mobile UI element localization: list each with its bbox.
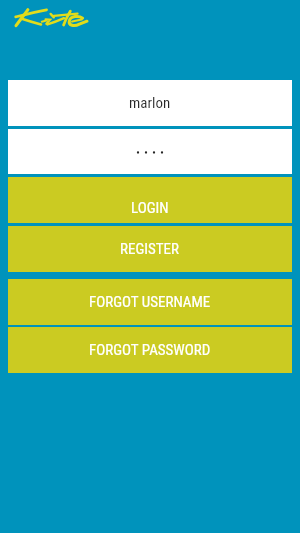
button[interactable]: FORGOT USERNAME: [8, 279, 292, 325]
staticText: FORGOT PASSWORD: [89, 341, 211, 359]
staticText: marlon: [129, 94, 171, 112]
staticText: LOGIN: [131, 199, 169, 217]
button[interactable]: marlon: [8, 80, 292, 126]
button[interactable]: REGISTER: [8, 226, 292, 272]
button[interactable]: FORGOT PASSWORD: [8, 327, 292, 373]
button[interactable]: [8, 129, 292, 174]
staticText: REGISTER: [120, 240, 180, 258]
button[interactable]: LOGIN: [8, 177, 292, 223]
other: Kite: [0, 0, 96, 38]
staticText: FORGOT USERNAME: [89, 293, 211, 311]
